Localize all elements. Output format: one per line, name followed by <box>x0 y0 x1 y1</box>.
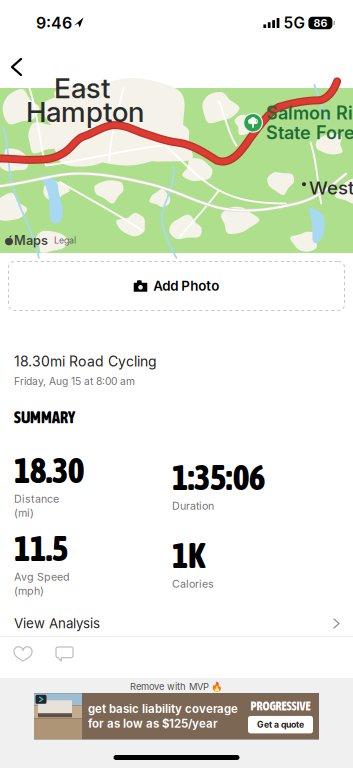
staticText: 18.30mi Road Cycling <box>14 353 157 370</box>
button[interactable]: Remove with MVP <box>130 678 223 693</box>
staticText: for as low as $125/year <box>88 717 218 730</box>
staticText: Hampton <box>26 95 144 129</box>
staticText: Avg Speed <box>14 570 70 583</box>
staticText: Remove with MVP <box>130 681 209 692</box>
button[interactable]: Like <box>12 637 34 678</box>
button[interactable]: Add Photo <box>0 261 353 311</box>
staticText: Salmon River <box>266 102 353 124</box>
staticText: 9:46 <box>36 13 72 33</box>
staticText: 18.30 <box>14 451 84 490</box>
staticText: West <box>309 176 353 199</box>
staticText: East <box>54 71 110 105</box>
staticText: Get a quote <box>257 719 304 730</box>
staticText: Distance <box>14 492 59 505</box>
button[interactable]: Comment <box>54 637 75 678</box>
staticText: Add Photo <box>153 278 219 294</box>
staticText: get basic liability coverage <box>88 702 238 716</box>
staticText: Legal <box>54 235 76 246</box>
staticText: View Analysis <box>14 615 100 631</box>
staticText: 86 <box>313 16 327 29</box>
staticText: 🔥 <box>211 681 223 692</box>
staticText: State Forest <box>266 122 353 144</box>
button[interactable]: View Analysis <box>0 611 353 636</box>
staticText: 11.5 <box>14 529 68 568</box>
staticText: Duration <box>172 499 214 512</box>
staticText: Maps <box>14 233 48 248</box>
staticText: 5G <box>283 14 304 32</box>
staticText: Friday, Aug 15 at 8:00 am <box>14 375 135 387</box>
button[interactable]: Back <box>0 46 37 88</box>
staticText: 1K <box>172 536 205 575</box>
staticText: 1:35:06 <box>172 458 265 497</box>
staticText: Calories <box>172 577 214 590</box>
staticText: SUMMARY <box>14 408 75 427</box>
staticText: (mph) <box>14 584 44 597</box>
staticText: (mi) <box>14 506 34 519</box>
staticText: PROGRESSIVE <box>250 699 310 713</box>
button[interactable]: get basic liability coverage <box>34 693 319 739</box>
